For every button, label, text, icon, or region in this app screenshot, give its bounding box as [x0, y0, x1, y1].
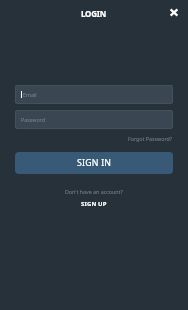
staticText: SIGN IN	[77, 157, 112, 169]
staticText: Password	[21, 116, 45, 123]
staticText: Forgot Password?	[128, 135, 173, 142]
staticText: SIGN UP	[81, 200, 107, 208]
button[interactable]: SIGN IN	[15, 152, 173, 174]
button[interactable]: Email	[15, 85, 173, 104]
button[interactable]: Close	[166, 4, 182, 20]
staticText: Don't have an account?	[65, 188, 123, 195]
button[interactable]: SIGN UP	[75, 198, 113, 210]
button[interactable]: Forgot Password?	[124, 134, 173, 143]
staticText: Email	[23, 91, 37, 98]
button[interactable]: Password	[15, 110, 173, 129]
staticText: LOGIN	[81, 8, 107, 19]
